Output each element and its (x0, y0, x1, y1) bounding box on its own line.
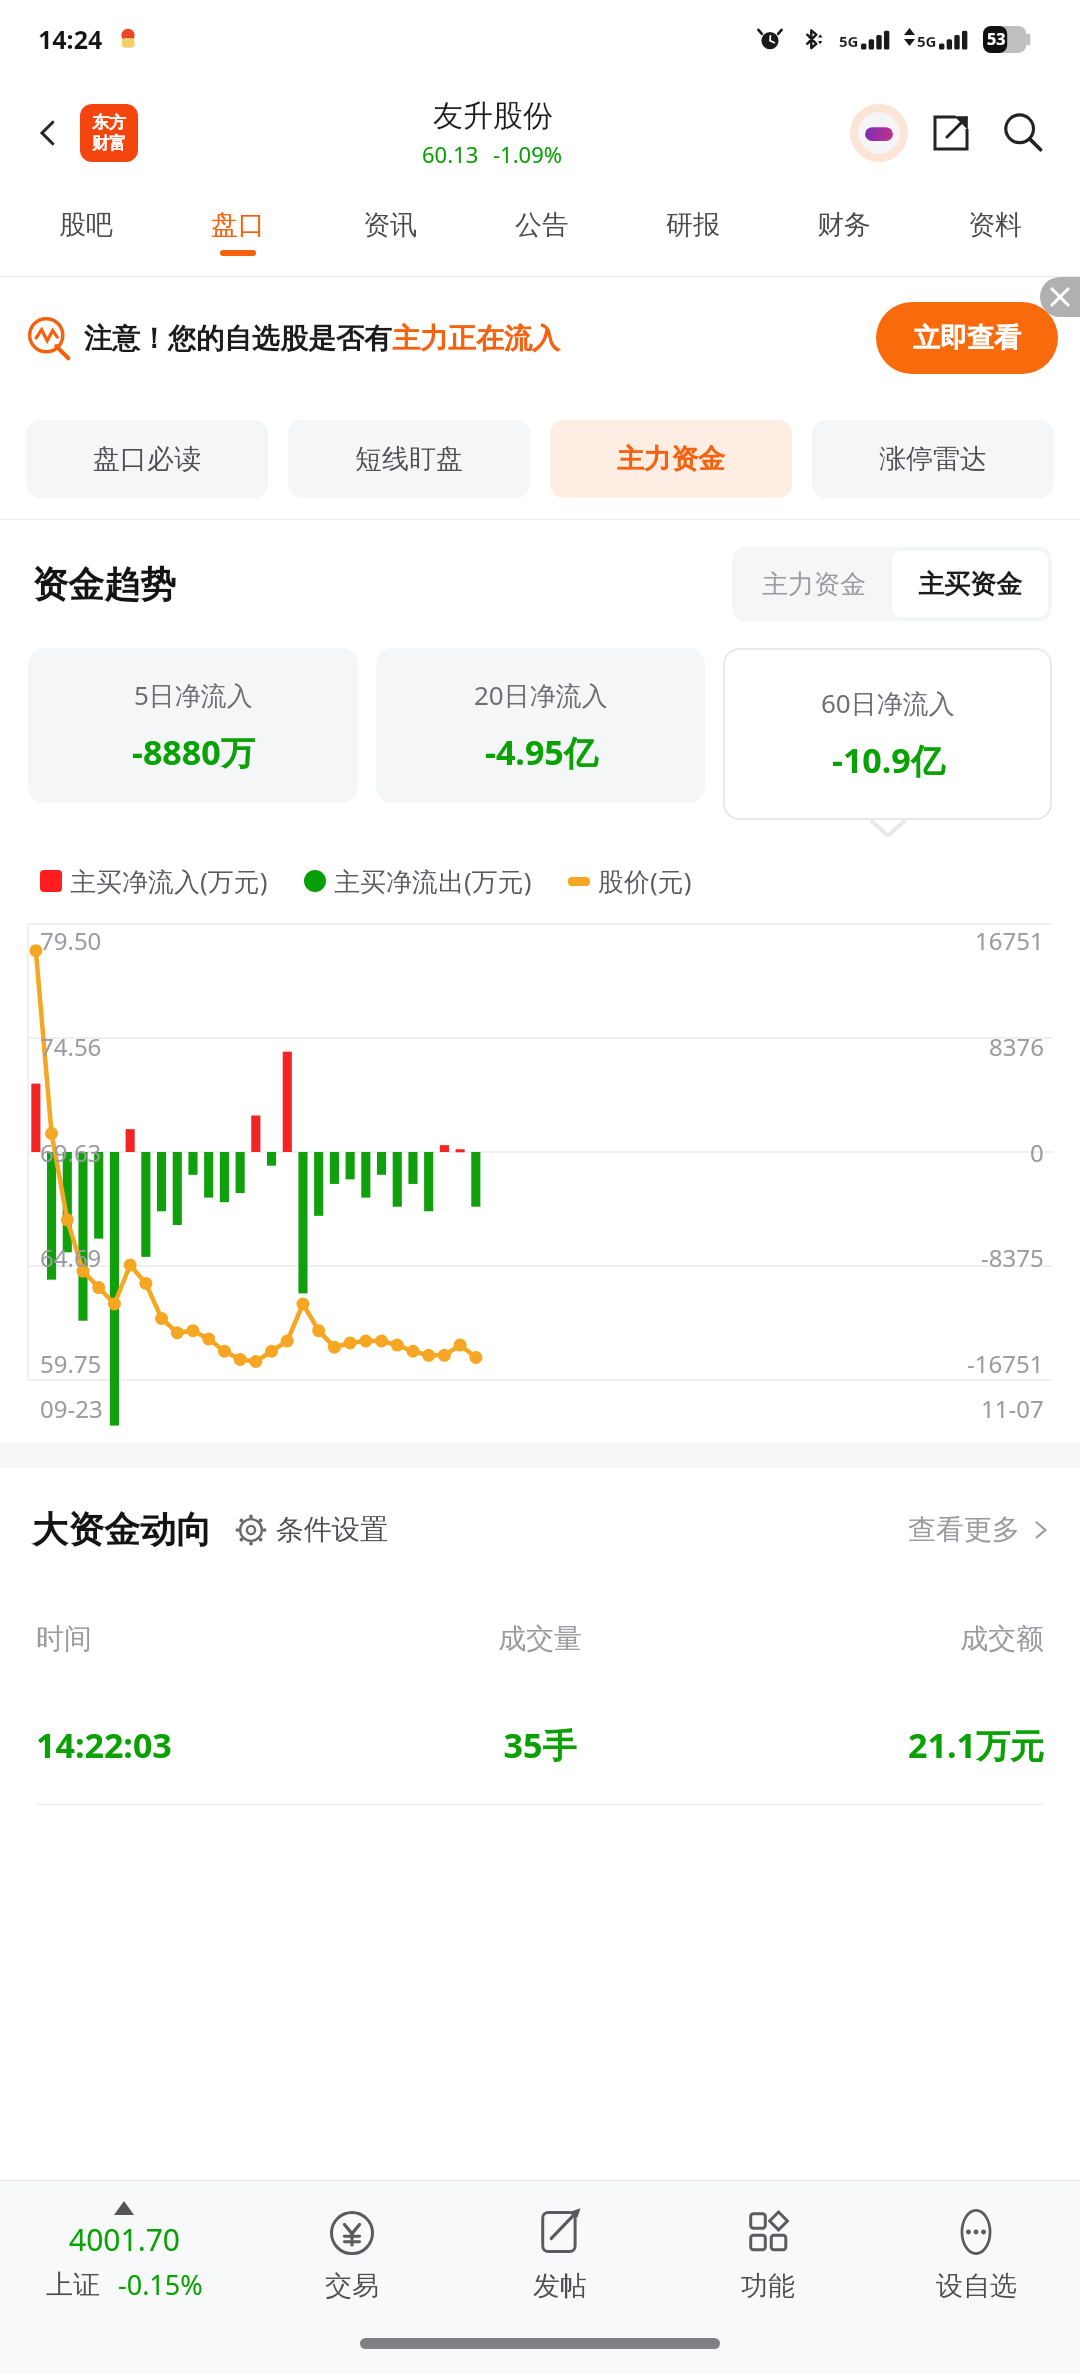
staticText: 资料 (968, 208, 1022, 242)
staticText: 5G (917, 31, 937, 51)
button[interactable]: 14:22:03 (0, 1686, 1080, 1805)
button[interactable]: 立即查看 (876, 302, 1058, 374)
staticText: 09-23 (40, 1392, 103, 1425)
button[interactable]: 主买资金 (892, 551, 1048, 617)
staticText: 4001.70 (69, 2219, 180, 2260)
staticText: 59.75 (40, 1347, 102, 1380)
button[interactable]: 财务 (768, 188, 919, 276)
staticText: 大资金动向 (32, 1507, 212, 1552)
button[interactable]: 主力资金 (550, 420, 792, 498)
button[interactable]: 资料 (919, 188, 1070, 276)
staticText: 资金趋势 (32, 562, 176, 607)
button[interactable]: 功能 (664, 2205, 872, 2303)
staticText: 14:24 (38, 22, 103, 56)
staticText: 79.50 (40, 924, 102, 957)
staticText: 成交额 (708, 1621, 1044, 1656)
button[interactable]: 短线盯盘 (288, 420, 530, 498)
staticText: 35手 (372, 1722, 708, 1768)
button[interactable]: East Money (80, 104, 138, 162)
staticText: 5日净流入 (134, 677, 253, 713)
staticText: 主买净流出(万元) (334, 863, 532, 899)
button[interactable]: 条件设置 (234, 1512, 388, 1547)
staticText: 53 (987, 28, 1006, 50)
staticText: 资讯 (363, 208, 417, 242)
button[interactable]: 盘口必读 (26, 420, 268, 498)
staticText: 16751 (975, 924, 1044, 957)
staticText: 注意！您的自选股是否有 (84, 321, 392, 356)
staticText: 主买净流入(万元) (70, 863, 268, 899)
button[interactable]: 60日净流入 (723, 648, 1052, 820)
staticText: 短线盯盘 (355, 442, 463, 476)
staticText: 上证 (46, 2268, 100, 2302)
staticText: 财富 (92, 133, 126, 154)
staticText: -1.09% (493, 139, 563, 169)
staticText: -16751 (967, 1347, 1044, 1380)
staticText: 财务 (817, 208, 871, 242)
staticText: -4.95亿 (485, 729, 598, 775)
staticText: 21.1万元 (708, 1722, 1044, 1768)
staticText: 69.63 (40, 1136, 102, 1169)
staticText: 60日净流入 (821, 685, 955, 721)
staticText: 发帖 (533, 2269, 587, 2303)
button[interactable]: 主力资金 (736, 551, 892, 617)
button[interactable]: Search (992, 102, 1054, 164)
button[interactable]: Assistant (848, 102, 910, 164)
staticText: 盘口 (211, 208, 265, 242)
staticText: 0 (1030, 1136, 1044, 1169)
staticText: -10.9亿 (832, 737, 945, 783)
staticText: 主力资金 (762, 568, 866, 601)
staticText: 设自选 (936, 2269, 1017, 2303)
staticText: 查看更多 (908, 1512, 1020, 1547)
button[interactable]: 公告 (466, 188, 617, 276)
staticText: 涨停雷达 (879, 442, 987, 476)
button[interactable]: 股吧 (10, 188, 162, 276)
staticText: 条件设置 (276, 1512, 388, 1547)
staticText: 股价(元) (598, 863, 692, 899)
staticText: 主力正在流入 (392, 321, 560, 356)
staticText: 公告 (515, 208, 569, 242)
staticText: 14:22:03 (36, 1722, 372, 1768)
staticText: 时间 (36, 1621, 372, 1656)
staticText: 60.13 (422, 139, 479, 169)
staticText: 友升股份 (433, 97, 553, 135)
staticText: -0.15% (118, 2266, 203, 2303)
button[interactable]: Back (20, 105, 76, 161)
button[interactable]: 设自选 (872, 2205, 1080, 2303)
button[interactable]: 20日净流入 (376, 648, 705, 803)
staticText: 主买资金 (918, 568, 1022, 601)
button[interactable]: Close (1040, 277, 1080, 317)
staticText: 8376 (989, 1030, 1044, 1063)
button[interactable]: 4001.70 (0, 2205, 248, 2303)
button[interactable]: 研报 (617, 188, 768, 276)
button[interactable]: Share (920, 102, 982, 164)
staticText: 74.56 (40, 1030, 102, 1063)
staticText: 盘口必读 (93, 442, 201, 476)
button[interactable]: 盘口 (162, 188, 314, 276)
button[interactable]: 5日净流入 (28, 648, 358, 803)
staticText: 立即查看 (913, 321, 1021, 355)
staticText: 股吧 (59, 208, 113, 242)
button[interactable]: 查看更多 (908, 1512, 1052, 1547)
staticText: 功能 (741, 2269, 795, 2303)
staticText: -8375 (981, 1241, 1044, 1274)
staticText: 主力资金 (617, 442, 725, 476)
staticText: -8880万 (132, 729, 255, 775)
button[interactable]: 发帖 (456, 2205, 664, 2303)
button[interactable]: 资讯 (314, 188, 466, 276)
button[interactable]: 交易 (248, 2205, 456, 2303)
staticText: 20日净流入 (474, 677, 608, 713)
staticText: 东方 (92, 112, 126, 133)
staticText: 11-07 (981, 1392, 1044, 1425)
staticText: 成交量 (372, 1621, 708, 1656)
staticText: 研报 (666, 208, 720, 242)
staticText: 交易 (325, 2269, 379, 2303)
button[interactable]: 涨停雷达 (812, 420, 1054, 498)
staticText: 5G (839, 31, 859, 51)
staticText: 64.69 (40, 1241, 102, 1274)
